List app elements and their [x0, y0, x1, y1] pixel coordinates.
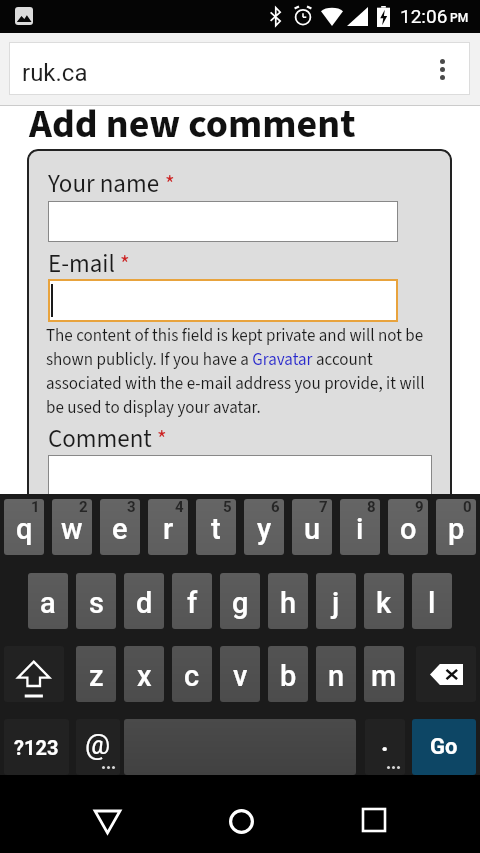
staticText: p [448, 512, 465, 546]
button[interactable]: g [220, 573, 260, 629]
staticText: o [400, 512, 417, 546]
button[interactable]: v [220, 646, 260, 702]
button[interactable]: w [52, 499, 92, 555]
staticText: ruk.ca [22, 59, 88, 87]
button[interactable]: l [412, 573, 452, 629]
button[interactable]: Symbols [4, 719, 69, 775]
button[interactable] [48, 455, 432, 515]
staticText: n [328, 659, 345, 693]
staticText: 4 [175, 499, 184, 516]
button[interactable]: x [124, 646, 164, 702]
staticText: * [157, 423, 167, 456]
staticText: * [120, 248, 130, 281]
staticText: 12:06 [400, 5, 448, 27]
staticText: a [40, 586, 56, 620]
button[interactable]: d [124, 573, 164, 629]
staticText: e [112, 512, 128, 546]
staticText: 1 [31, 499, 40, 516]
staticText: . [381, 727, 389, 757]
button[interactable]: c [172, 646, 212, 702]
button[interactable]: i [340, 499, 380, 555]
staticText: v [233, 659, 248, 693]
staticText: h [280, 586, 297, 620]
staticText: Add new comment [29, 96, 356, 153]
staticText: m [371, 659, 397, 693]
staticText: E-mail [48, 246, 115, 282]
staticText: Your name [48, 166, 160, 202]
staticText: * [165, 168, 175, 201]
staticText: The content of this field is kept privat… [46, 324, 426, 420]
button[interactable]: k [364, 573, 404, 629]
staticText: y [257, 512, 272, 546]
button[interactable]: j [316, 573, 356, 629]
staticText: i [356, 512, 364, 546]
button[interactable]: p [436, 499, 476, 555]
button[interactable]: More options [418, 42, 466, 95]
staticText: 6 [271, 499, 280, 516]
staticText: PM [450, 11, 469, 25]
staticText: w [61, 512, 83, 546]
button[interactable]: z [76, 646, 116, 702]
button[interactable] [48, 279, 398, 322]
staticText: Go [430, 734, 458, 760]
staticText: 7 [319, 499, 328, 516]
staticText: 0 [463, 499, 472, 516]
button[interactable] [48, 201, 398, 242]
button[interactable]: Home [217, 775, 265, 853]
button[interactable]: o [388, 499, 428, 555]
staticText: d [136, 586, 153, 620]
staticText: s [89, 586, 104, 620]
button[interactable]: h [268, 573, 308, 629]
staticText: @ [85, 728, 111, 761]
button[interactable]: r [148, 499, 188, 555]
staticText: 2 [79, 499, 88, 516]
button[interactable]: q [4, 499, 44, 555]
button[interactable]: t [196, 499, 236, 555]
staticText: u [304, 512, 321, 546]
button[interactable]: f [172, 573, 212, 629]
other: Image notification [15, 7, 33, 25]
button[interactable]: Recent apps [350, 775, 398, 853]
staticText: q [16, 512, 33, 546]
button[interactable]: Period [365, 719, 405, 775]
button[interactable]: y [244, 499, 284, 555]
button[interactable]: ruk.ca [9, 42, 470, 95]
staticText: r [163, 512, 174, 546]
button[interactable]: b [268, 646, 308, 702]
staticText: 8 [367, 499, 376, 516]
staticText: g [232, 586, 249, 620]
staticText: x [137, 659, 152, 693]
staticText: f [187, 586, 198, 620]
button[interactable]: Shift [4, 646, 64, 702]
button[interactable]: s [76, 573, 116, 629]
button[interactable]: m [364, 646, 404, 702]
button[interactable]: Backspace [416, 646, 476, 702]
staticText: k [376, 586, 392, 620]
button[interactable]: u [292, 499, 332, 555]
staticText: t [211, 512, 221, 546]
staticText: l [428, 586, 436, 620]
staticText: j [332, 586, 340, 620]
button[interactable]: a [28, 573, 68, 629]
staticText: b [280, 659, 297, 693]
staticText: ?123 [14, 736, 59, 759]
button[interactable]: Back [83, 775, 131, 853]
staticText: 5 [223, 499, 232, 516]
staticText: 3 [127, 499, 136, 516]
button[interactable]: Go [412, 719, 476, 775]
staticText: 9 [415, 499, 424, 516]
staticText: Comment [48, 421, 152, 457]
button[interactable]: n [316, 646, 356, 702]
button[interactable]: e [100, 499, 140, 555]
staticText: c [184, 659, 200, 693]
button[interactable]: At sign [76, 719, 120, 775]
staticText: z [89, 659, 104, 693]
